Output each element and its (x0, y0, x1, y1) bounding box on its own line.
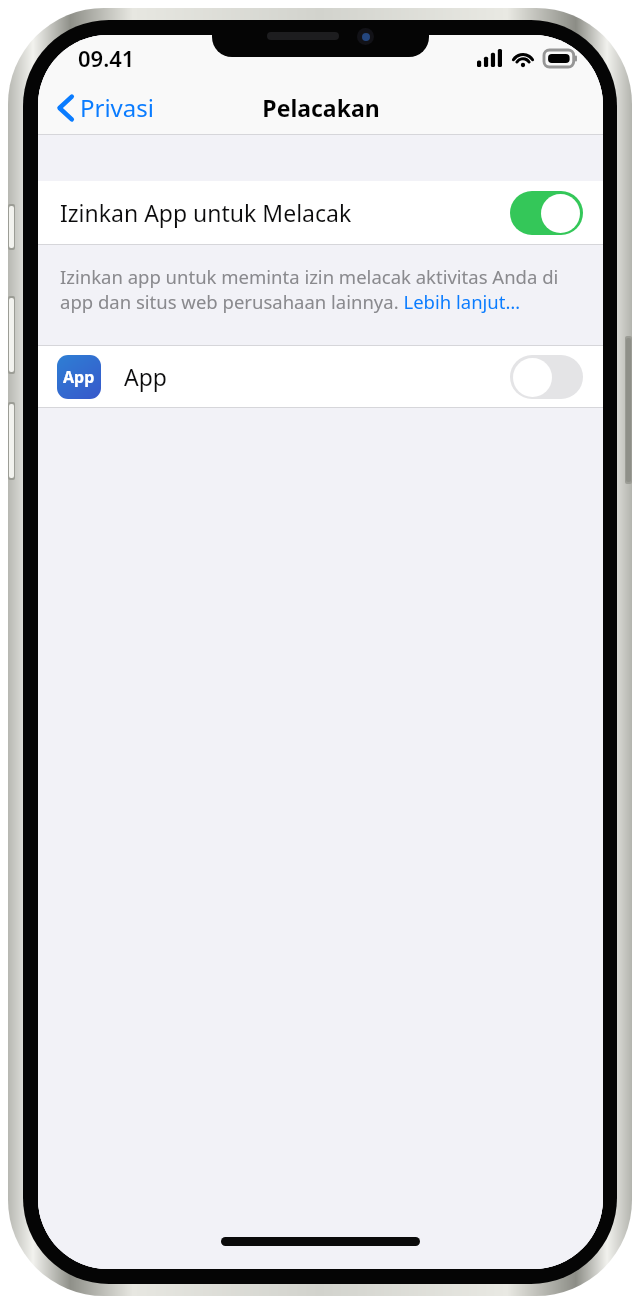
button[interactable]: Toggle off (510, 355, 583, 399)
button[interactable]: Toggle on (510, 191, 583, 235)
staticText: 09.41 (78, 43, 135, 73)
staticText: App (63, 366, 95, 388)
staticText: Izinkan app untuk meminta izin melacak a… (60, 264, 581, 315)
staticText: Izinkan App untuk Melacak (60, 197, 352, 228)
staticText: Privasi (80, 91, 154, 124)
button[interactable]: Privasi (52, 87, 160, 128)
staticText: App (124, 361, 167, 392)
staticText: Pelacakan (262, 92, 380, 123)
button[interactable]: Izinkan App untuk Melacak (38, 181, 603, 244)
button[interactable]: App (38, 346, 603, 407)
